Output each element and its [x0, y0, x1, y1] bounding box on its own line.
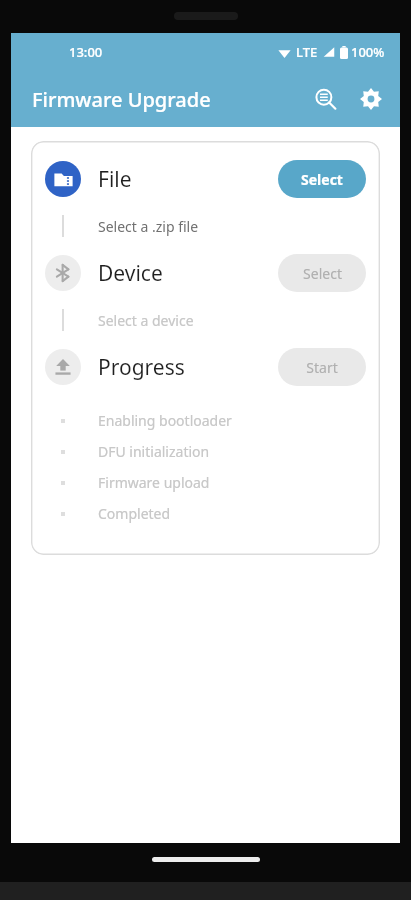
staticText: Start	[306, 358, 338, 377]
button[interactable]: Search	[302, 76, 348, 122]
button[interactable]: Settings	[348, 76, 394, 122]
staticText: File	[98, 165, 278, 194]
staticText: Device	[98, 259, 278, 288]
staticText: Select a device	[98, 311, 194, 330]
staticText: DFU initialization	[98, 442, 210, 461]
button[interactable]: Start	[278, 348, 366, 386]
staticText: Firmware upload	[98, 473, 210, 492]
staticText: Firmware Upgrade	[32, 86, 211, 113]
button[interactable]: Select	[278, 160, 366, 198]
staticText: 100%	[351, 43, 385, 61]
staticText: Select	[303, 264, 342, 283]
staticText: Progress	[98, 353, 278, 382]
staticText: Completed	[98, 504, 171, 523]
staticText: Select	[301, 170, 343, 189]
staticText: LTE	[296, 43, 318, 61]
staticText: Select a .zip file	[98, 217, 199, 236]
staticText: Enabling bootloader	[98, 411, 232, 430]
staticText: 13:00	[69, 43, 103, 61]
button[interactable]: Select	[278, 254, 366, 292]
